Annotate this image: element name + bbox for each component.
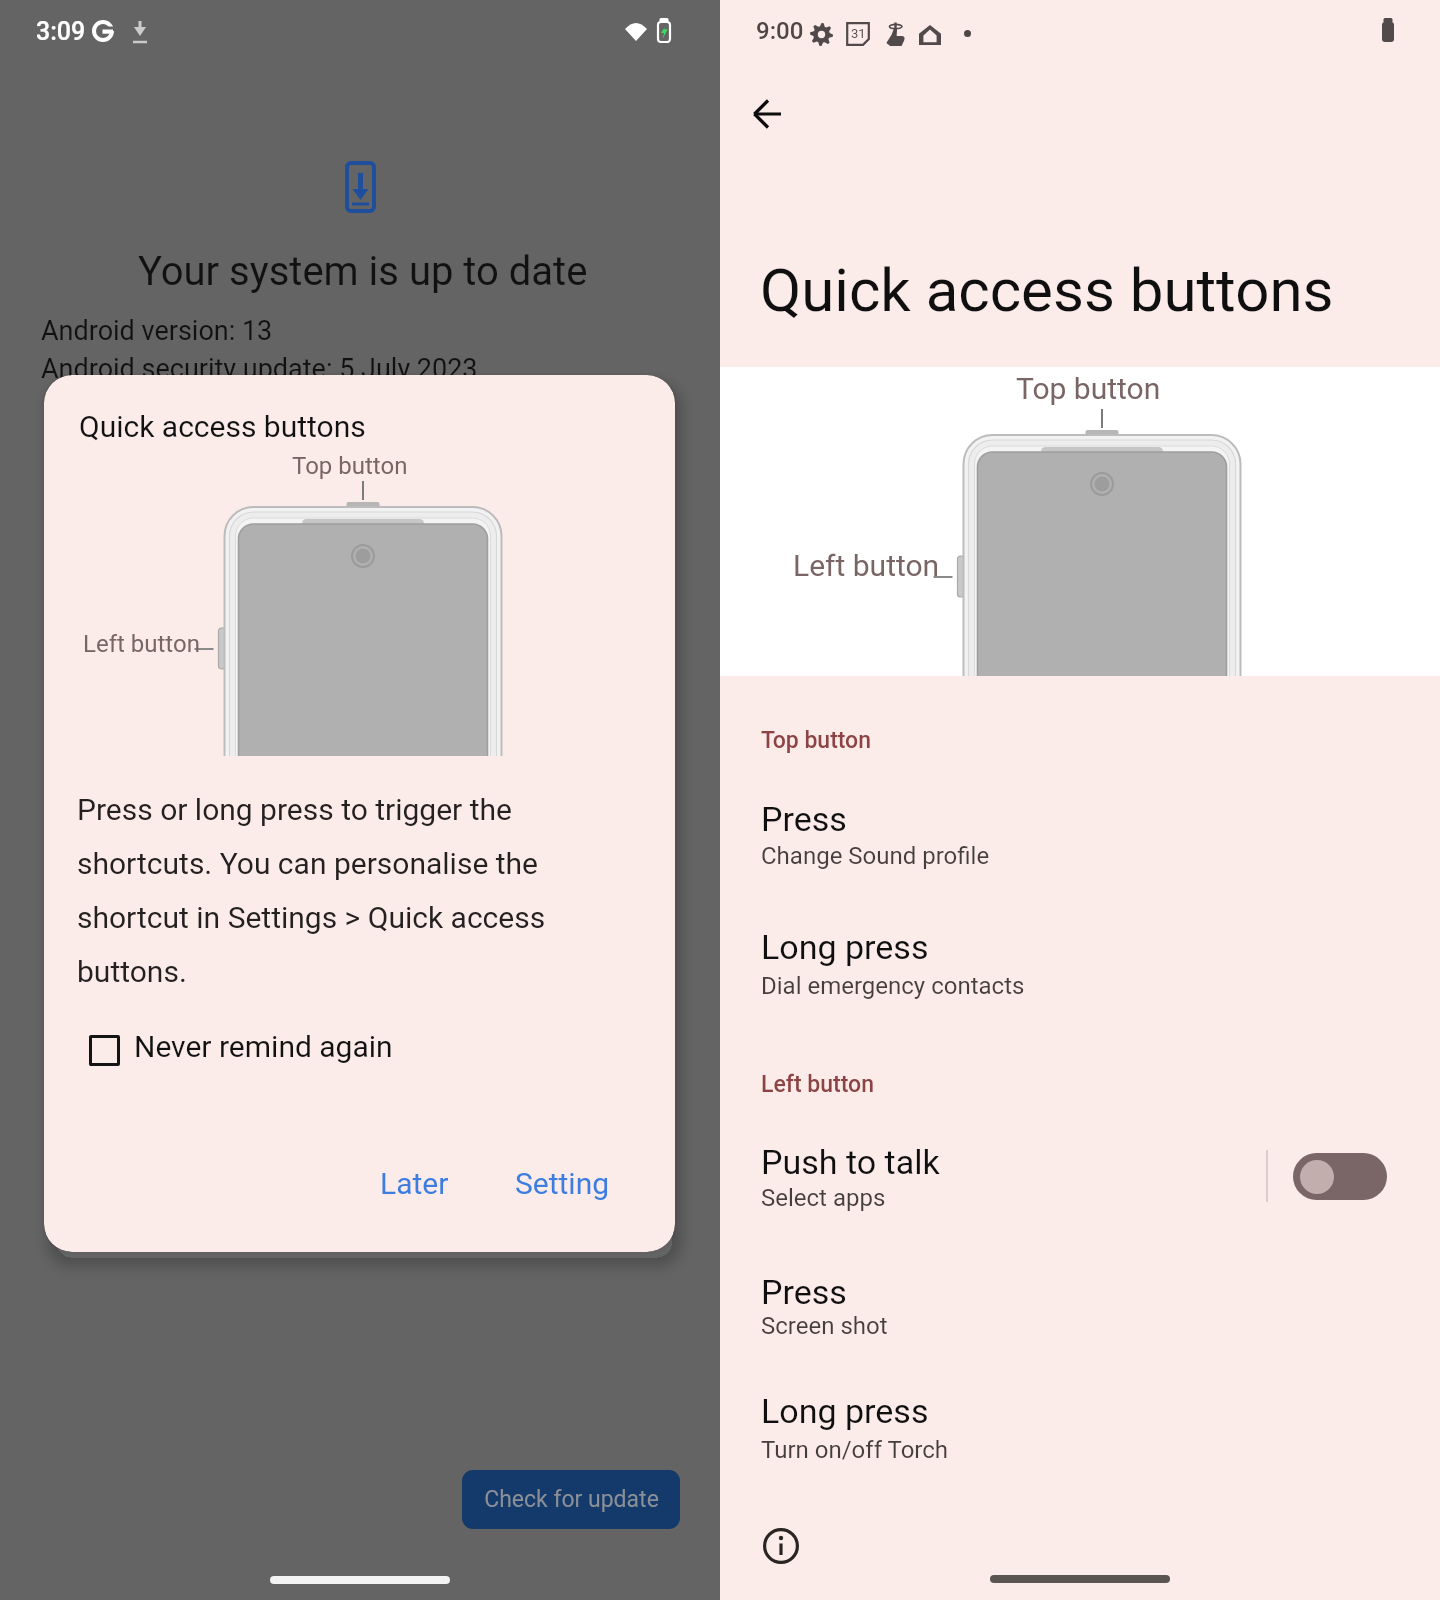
staticText: Later	[380, 1166, 449, 1201]
button[interactable]: Info	[746, 1511, 816, 1581]
staticText: Quick access buttons	[760, 255, 1334, 325]
button[interactable]: Later	[370, 1156, 459, 1211]
button[interactable]: Never remind again	[89, 1029, 405, 1072]
staticText: Press	[761, 799, 847, 839]
staticText: Press	[761, 1272, 847, 1312]
button[interactable]	[720, 1379, 1440, 1467]
button[interactable]: Push to talk toggle	[1293, 1153, 1387, 1200]
staticText: 3:09	[36, 17, 86, 46]
staticText: Top button	[761, 727, 872, 754]
button[interactable]	[720, 915, 1440, 1003]
staticText: Top button	[1016, 371, 1161, 406]
staticText: 31	[851, 26, 866, 41]
button[interactable]	[720, 1130, 1440, 1215]
staticText: Your system is up to date	[138, 248, 588, 295]
staticText: Long press	[761, 1391, 929, 1431]
staticText: Left button	[83, 630, 200, 658]
button[interactable]: Check for update	[462, 1470, 680, 1529]
staticText: Setting	[515, 1166, 610, 1201]
staticText: Left button	[793, 548, 940, 583]
staticText: Turn on/off Torch	[761, 1436, 949, 1464]
staticText: Push to talk	[761, 1142, 940, 1182]
staticText: Press or long press to trigger the short…	[77, 792, 557, 989]
staticText: Never remind again	[134, 1029, 393, 1064]
button[interactable]	[720, 1260, 1440, 1343]
staticText: Check for update	[484, 1486, 659, 1513]
button[interactable]	[720, 787, 1440, 873]
staticText: Long press	[761, 927, 929, 967]
staticText: Android security update: 5 July 2023	[41, 353, 478, 385]
staticText: 9:00	[756, 17, 804, 45]
staticText: Quick access buttons	[79, 409, 366, 444]
staticText: Android version: 13	[41, 315, 273, 347]
staticText: Dial emergency contacts	[761, 972, 1025, 1000]
staticText: Left button	[761, 1071, 874, 1098]
staticText: Select apps	[761, 1184, 886, 1212]
staticText: Change Sound profile	[761, 842, 990, 870]
button[interactable]: Back	[735, 82, 799, 146]
button[interactable]: Setting	[505, 1156, 620, 1211]
staticText: Screen shot	[761, 1312, 888, 1340]
staticText: Top button	[292, 452, 408, 480]
